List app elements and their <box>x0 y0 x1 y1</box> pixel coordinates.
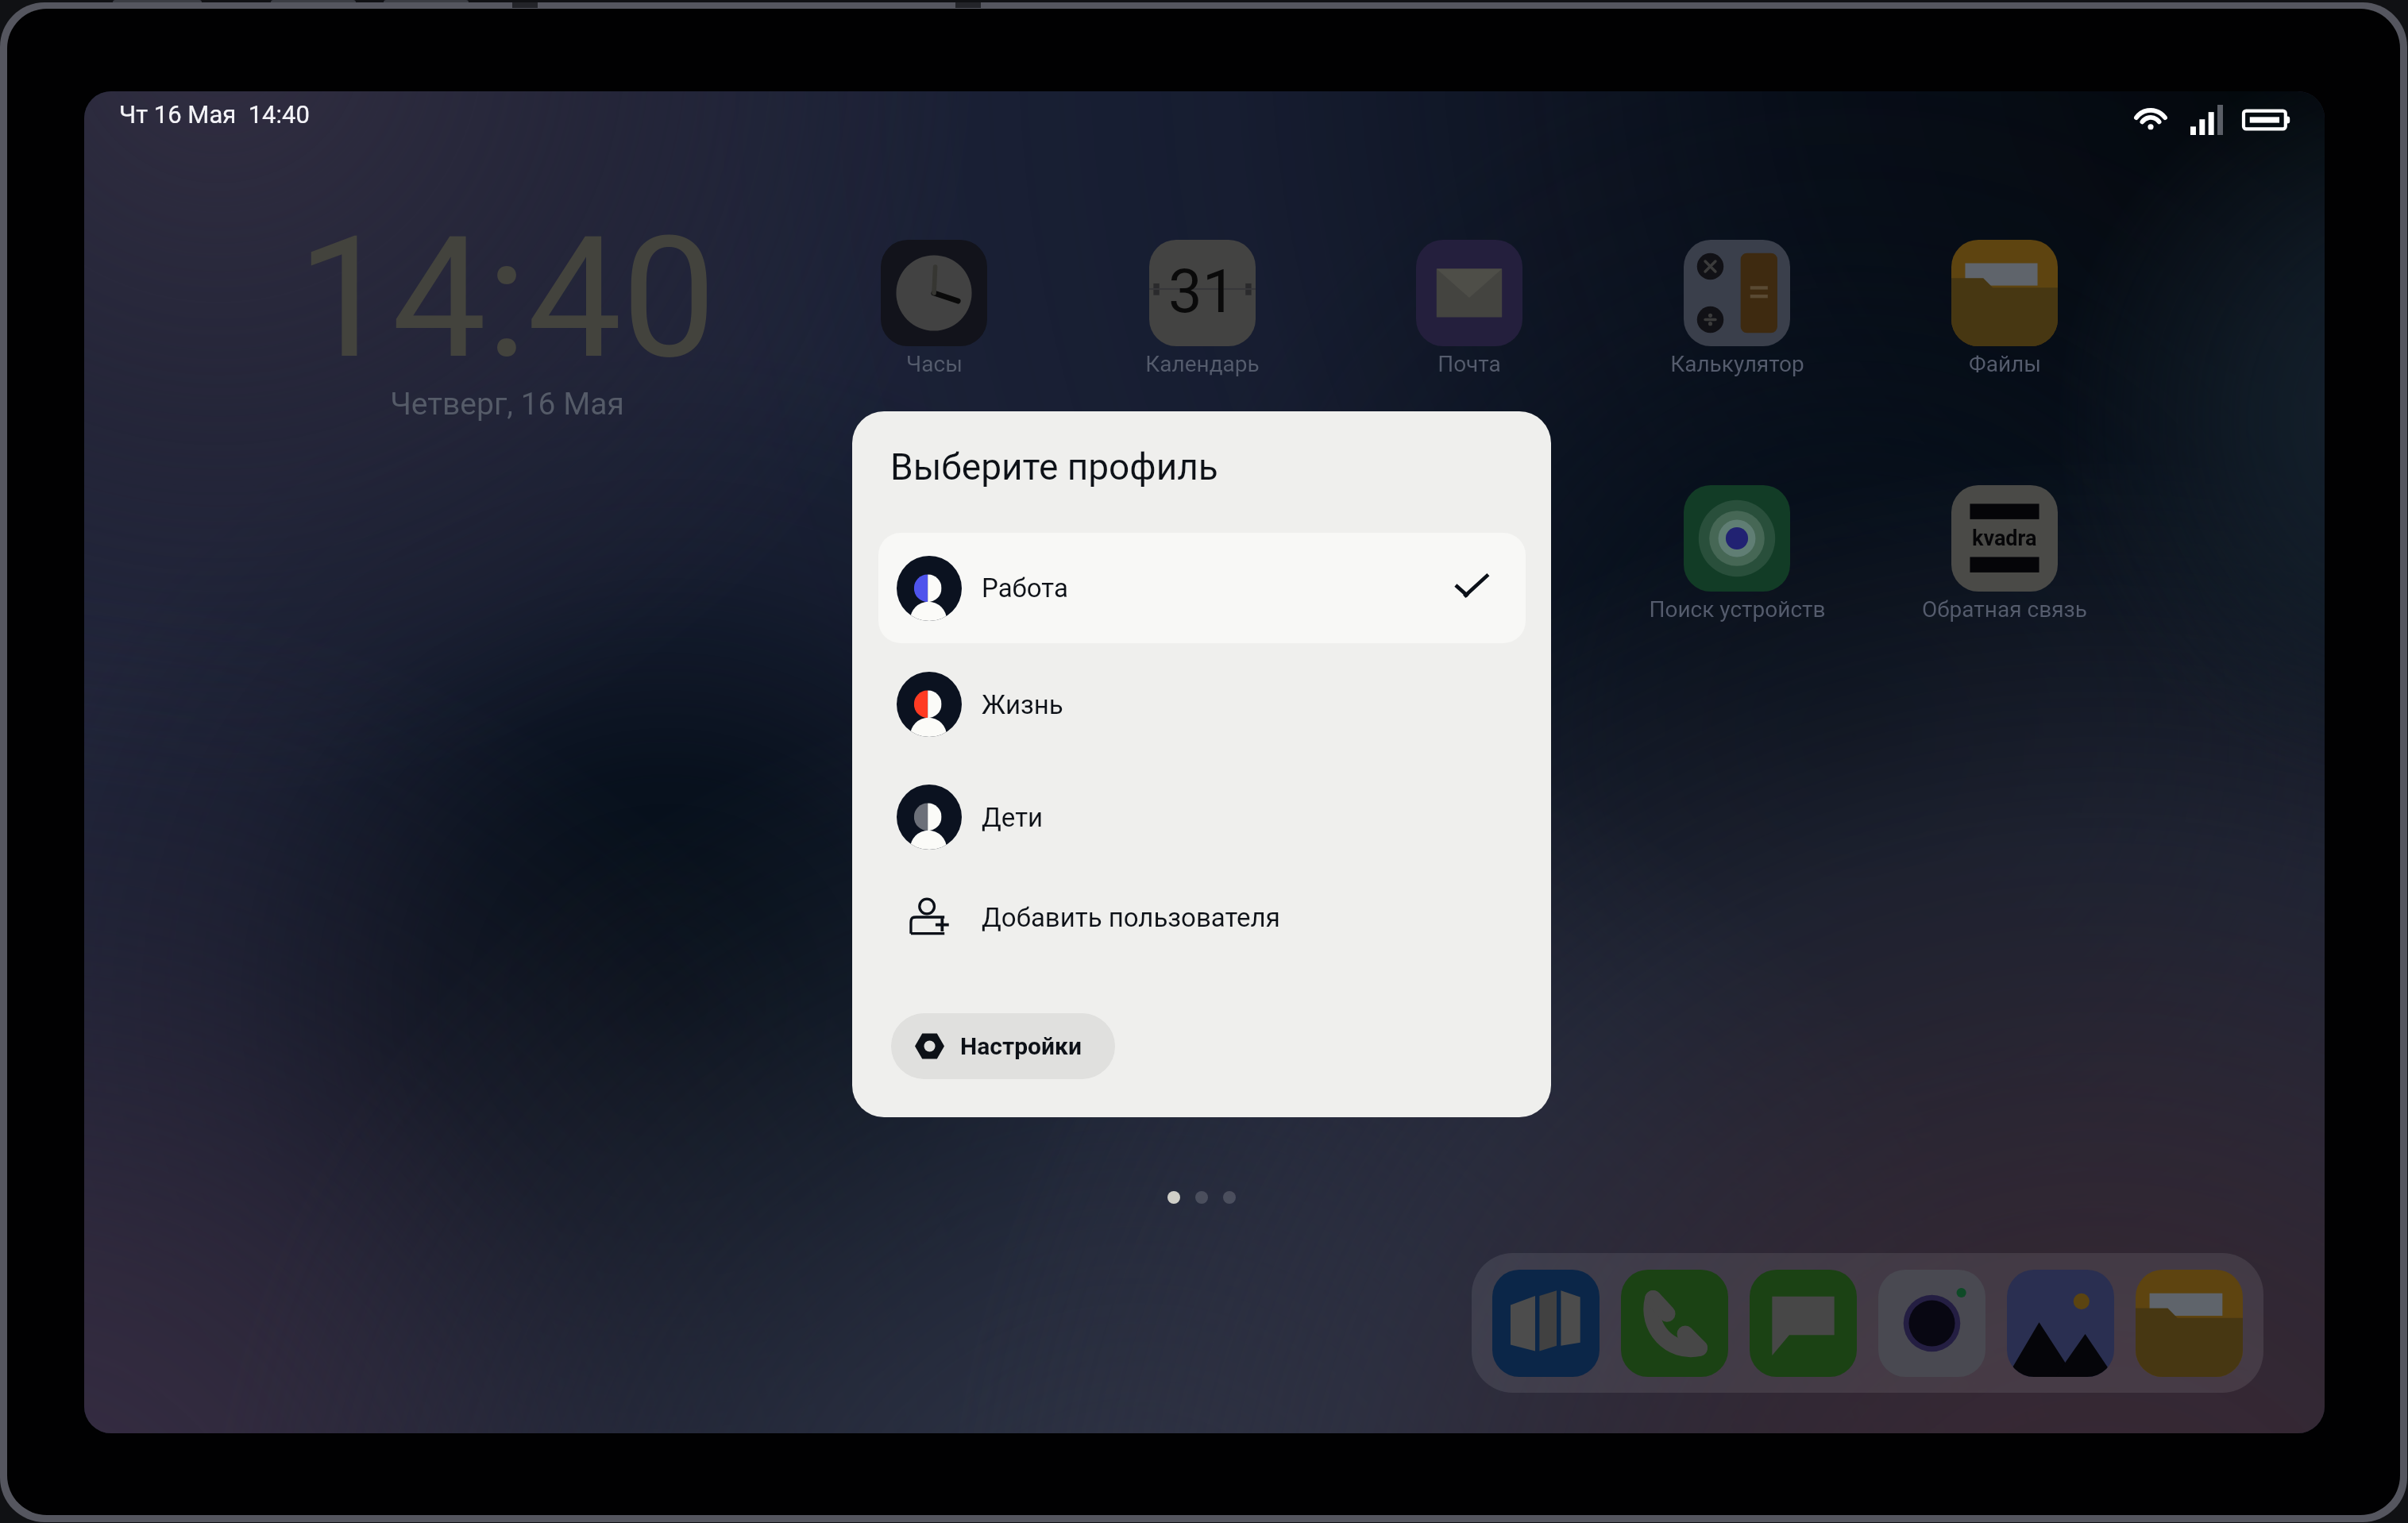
button[interactable]: Калькулятор <box>1618 240 1856 377</box>
button[interactable]: Phone <box>1621 1270 1728 1377</box>
staticText: Чт 16 Мая 14:40 <box>119 100 310 129</box>
button[interactable]: Дети <box>878 765 1526 869</box>
staticText: Часы <box>906 351 963 377</box>
staticText: kvadra <box>1972 526 2037 551</box>
button[interactable]: Настройки <box>891 1013 1115 1079</box>
button[interactable]: Часы <box>815 240 1053 377</box>
staticText: Почта <box>1437 351 1501 377</box>
button[interactable]: Работа <box>878 533 1526 643</box>
staticText: Файлы <box>1969 351 2041 377</box>
button[interactable]: Файлы <box>1885 240 2124 377</box>
staticText: Выберите профиль <box>890 445 1218 488</box>
button[interactable]: Camera <box>1878 1270 1985 1377</box>
button[interactable]: Жизнь <box>878 653 1526 756</box>
button[interactable]: Добавить пользователя <box>878 869 1526 965</box>
staticText: Дети <box>982 802 1044 833</box>
button[interactable]: Поиск устройств <box>1618 485 1856 623</box>
button[interactable]: Files <box>2136 1270 2243 1377</box>
staticText: 31 <box>1168 256 1237 326</box>
staticText: Калькулятор <box>1670 351 1804 377</box>
staticText: Календарь <box>1145 351 1260 377</box>
button[interactable]: Store <box>1492 1270 1600 1377</box>
staticText: Добавить пользователя <box>982 902 1280 933</box>
staticText: Настройки <box>960 1032 1082 1060</box>
button[interactable]: Gallery <box>2007 1270 2114 1377</box>
staticText: Обратная связь <box>1922 596 2087 623</box>
staticText: Четверг, 16 Мая <box>390 386 624 422</box>
button[interactable]: Messages <box>1750 1270 1857 1377</box>
staticText: Работа <box>982 573 1068 603</box>
staticText: 14:40 <box>297 199 716 396</box>
staticText: Поиск устройств <box>1649 596 1826 623</box>
button[interactable]: kvadra <box>1885 485 2124 623</box>
staticText: Жизнь <box>982 689 1063 720</box>
button[interactable]: 31 <box>1083 240 1322 377</box>
button[interactable]: Почта <box>1350 240 1588 377</box>
